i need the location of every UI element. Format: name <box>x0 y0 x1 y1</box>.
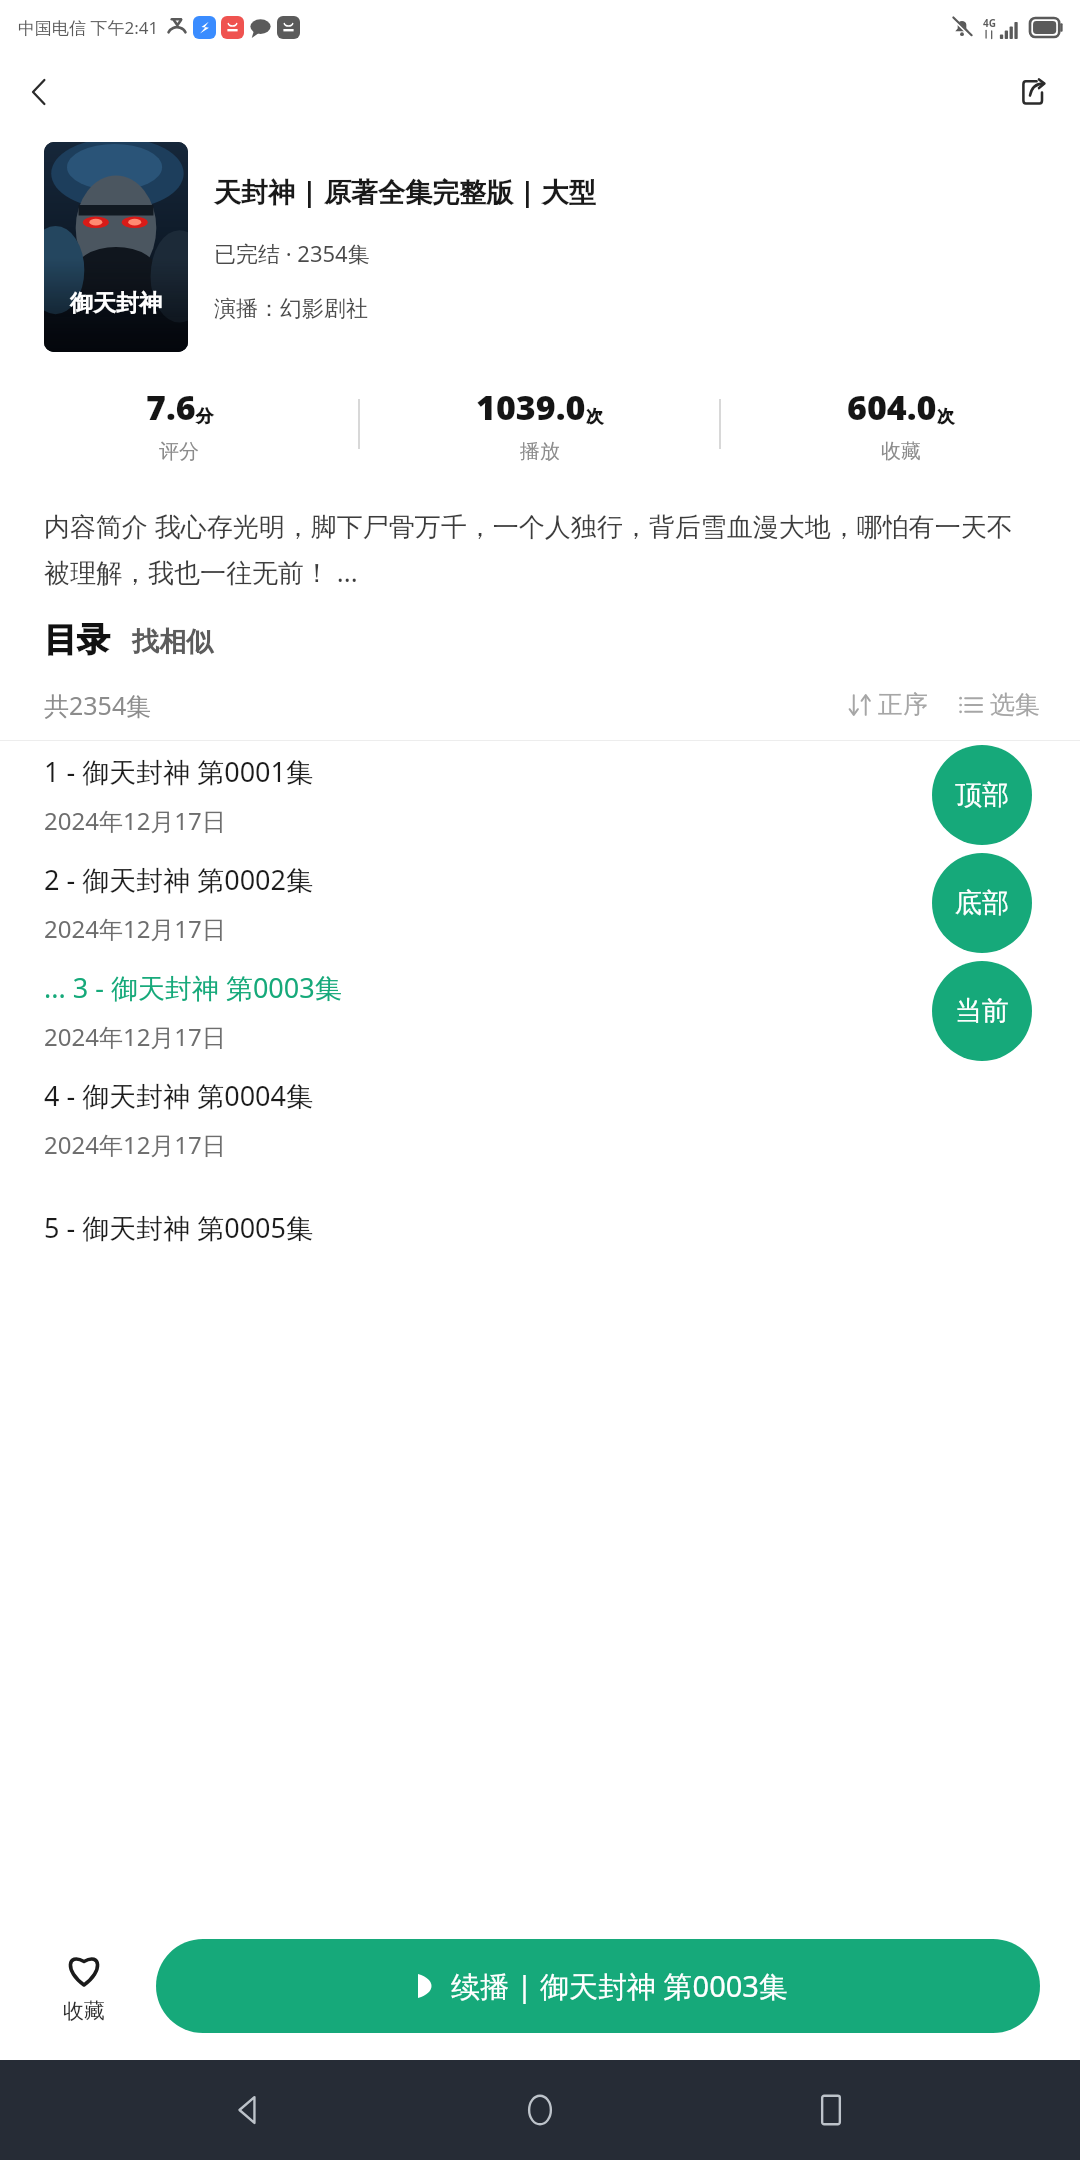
button[interactable]: 604.0 <box>721 384 1080 464</box>
staticText: 7.6 <box>146 384 196 430</box>
button[interactable]: 当前 <box>932 961 1032 1061</box>
button[interactable]: 内容简介 我心存光明，脚下尸骨万千，一个人独行，背后雪血漫大地，哪怕有一天不被理… <box>44 508 1036 589</box>
staticText: 收藏 <box>63 1998 105 2024</box>
button[interactable]: 收藏 <box>28 1948 140 2024</box>
staticText: 2024年12月17日 <box>44 1020 226 1053</box>
staticText: 收藏 <box>881 439 921 464</box>
button[interactable]: Back <box>207 2068 291 2152</box>
staticText: 播放 <box>520 439 560 464</box>
button[interactable]: 4 - 御天封神 第0004集 <box>0 1065 1080 1173</box>
staticText: 2024年12月17日 <box>44 912 226 945</box>
staticText: 选集 <box>990 689 1040 720</box>
staticText: 续播 | 御天封神 第0003集 <box>451 1966 788 2006</box>
staticText: 2024年12月17日 <box>44 804 226 837</box>
staticText: 天封神 | 原著全集完整版 | 大型 <box>214 173 596 210</box>
staticText: 目录 <box>44 619 110 661</box>
button[interactable]: 正序 <box>843 683 932 726</box>
staticText: 分 <box>196 406 213 427</box>
staticText: 2 - 御天封神 第0002集 <box>44 861 313 898</box>
button[interactable]: Recents <box>789 2068 873 2152</box>
staticText: 正序 <box>878 689 928 720</box>
staticText: 中国电信 下午2:41 <box>18 16 159 39</box>
staticText: 顶部 <box>955 778 1009 812</box>
button[interactable]: 御天封神 <box>44 142 188 352</box>
button[interactable]: 续播 | 御天封神 第0003集 <box>156 1939 1040 2033</box>
button[interactable]: 目录 <box>44 619 110 661</box>
button[interactable]: 找相似 <box>132 625 213 661</box>
staticText: 评分 <box>159 439 199 464</box>
button[interactable]: 5 - 御天封神 第0005集 <box>0 1173 1080 1281</box>
button[interactable]: Share <box>1002 61 1064 123</box>
staticText: 4 - 御天封神 第0004集 <box>44 1077 313 1114</box>
staticText: 演播：幻影剧社 <box>214 295 368 323</box>
staticText: 次 <box>937 406 954 427</box>
staticText: 次 <box>586 406 603 427</box>
button[interactable]: ... 3 - 御天封神 第0003集 <box>0 957 1080 1065</box>
button[interactable]: 选集 <box>954 683 1044 726</box>
staticText: 当前 <box>955 994 1009 1028</box>
staticText: 1039.0 <box>476 384 586 430</box>
staticText: ... 3 - 御天封神 第0003集 <box>44 969 342 1006</box>
button[interactable]: 底部 <box>932 853 1032 953</box>
staticText: 604.0 <box>847 384 937 430</box>
staticText: 找相似 <box>132 625 213 659</box>
staticText: 底部 <box>955 886 1009 920</box>
staticText: 已完结 · 2354集 <box>214 238 370 268</box>
staticText: 共2354集 <box>44 688 152 722</box>
button[interactable]: 1 - 御天封神 第0001集 <box>0 741 1080 849</box>
button[interactable]: 7.6 <box>0 384 358 464</box>
staticText: 2024年12月17日 <box>44 1128 226 1161</box>
staticText: 5 - 御天封神 第0005集 <box>44 1209 313 1246</box>
button[interactable]: Home <box>498 2068 582 2152</box>
button[interactable]: 2 - 御天封神 第0002集 <box>0 849 1080 957</box>
button[interactable]: 1039.0 <box>360 384 719 464</box>
staticText: 御天封神 <box>70 289 162 318</box>
button[interactable]: 顶部 <box>932 745 1032 845</box>
staticText: 1 - 御天封神 第0001集 <box>44 753 313 790</box>
staticText: 4G <box>983 16 996 30</box>
button[interactable]: Back <box>8 61 70 123</box>
staticText: 内容简介 我心存光明，脚下尸骨万千，一个人独行，背后雪血漫大地，哪怕有一天不被理… <box>44 508 1036 589</box>
